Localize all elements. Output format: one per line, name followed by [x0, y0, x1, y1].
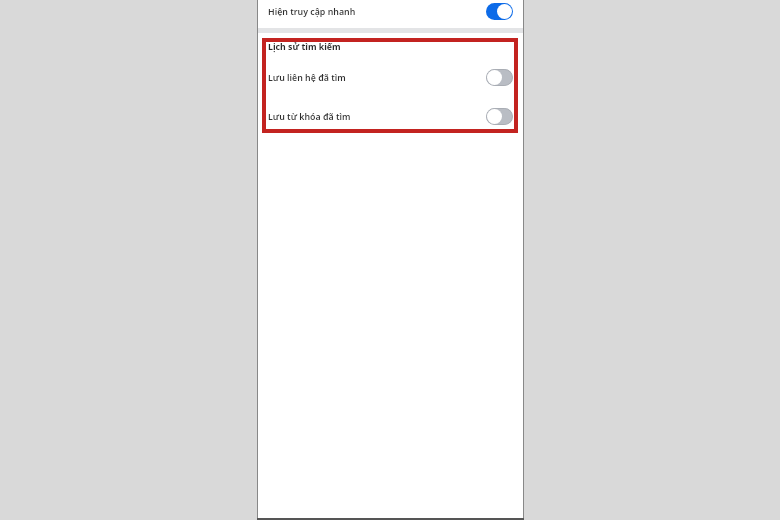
other: Hiện truy cập nhanh — [486, 3, 513, 20]
staticText: Lưu liên hệ đã tìm — [268, 72, 346, 84]
staticText: Hiện truy cập nhanh — [268, 6, 356, 18]
button[interactable]: Hiện truy cập nhanh — [258, 0, 523, 28]
button[interactable]: Lưu từ khóa đã tìm — [258, 103, 523, 130]
staticText: Lịch sử tìm kiếm — [268, 41, 341, 53]
other: Lưu từ khóa đã tìm — [486, 108, 513, 125]
button[interactable]: Lưu liên hệ đã tìm — [258, 64, 523, 91]
other: Lưu liên hệ đã tìm — [486, 69, 513, 86]
staticText: Lưu từ khóa đã tìm — [268, 111, 351, 123]
